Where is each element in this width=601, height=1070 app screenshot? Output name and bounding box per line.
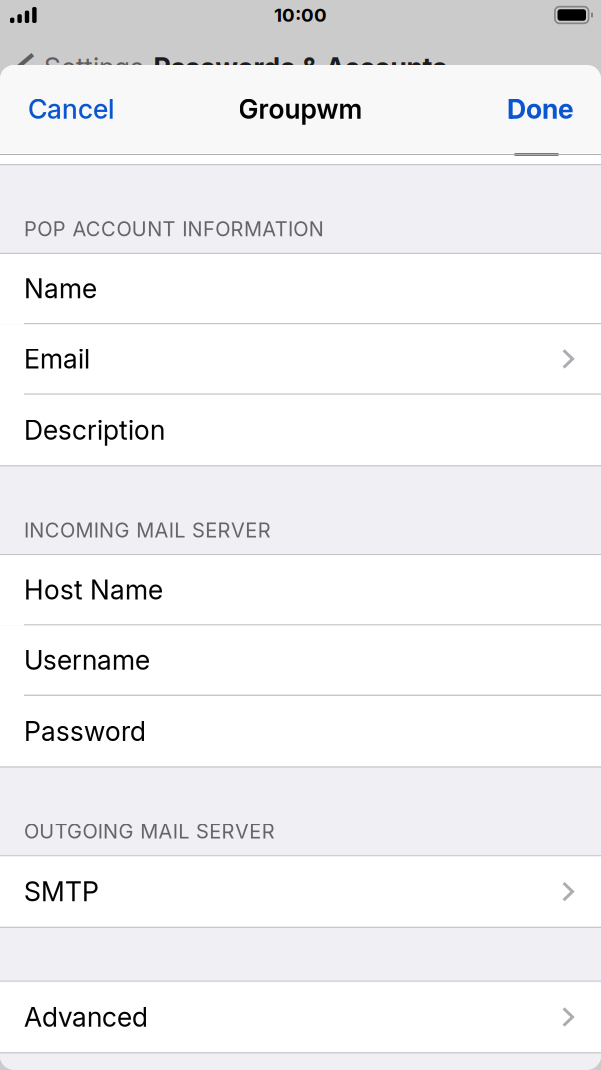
staticText: Name [24, 272, 97, 305]
button[interactable]: Name [0, 254, 601, 324]
button[interactable]: Advanced [0, 982, 601, 1052]
staticText: 10:00 [274, 4, 327, 26]
staticText: SMTP [24, 875, 99, 908]
staticText: Done [507, 93, 574, 125]
staticText: OUTGOING MAIL SERVER [24, 819, 275, 843]
staticText: Password [24, 715, 146, 747]
staticText: Host Name [24, 574, 163, 606]
staticText: Cancel [28, 93, 114, 125]
staticText: Advanced [24, 1001, 148, 1033]
button[interactable]: Cancel [0, 65, 128, 153]
button[interactable]: Email [0, 324, 601, 395]
staticText: Groupwm [238, 93, 362, 125]
staticText: Username [24, 644, 150, 676]
staticText: POP ACCOUNT INFORMATION [24, 217, 324, 241]
staticText: Email [24, 343, 90, 375]
button[interactable]: Host Name [0, 555, 601, 626]
button[interactable]: Username [0, 626, 601, 696]
staticText: Settings [44, 51, 144, 84]
staticText: Description [24, 414, 165, 446]
button[interactable]: SMTP [0, 856, 601, 927]
button[interactable]: Description [0, 395, 601, 465]
staticText: INCOMING MAIL SERVER [24, 518, 271, 542]
button[interactable]: Done [493, 65, 601, 153]
staticText: Passwords & Accounts [153, 51, 447, 84]
button[interactable]: Password [0, 696, 601, 766]
